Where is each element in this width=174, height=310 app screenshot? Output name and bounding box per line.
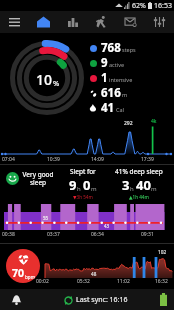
staticText: 05:32 xyxy=(77,278,90,285)
staticText: 16:32 xyxy=(155,278,168,285)
staticText: 616 xyxy=(101,85,121,100)
staticText: ▼3h 54m xyxy=(73,194,93,200)
staticText: active xyxy=(109,61,125,68)
staticText: 62% xyxy=(132,1,146,11)
staticText: 16:53 xyxy=(154,1,172,11)
button[interactable]: Home xyxy=(29,11,58,33)
button[interactable]: Last sync: 16:16 xyxy=(62,293,130,307)
staticText: 00:02 xyxy=(36,278,49,285)
staticText: 03:37 xyxy=(47,231,60,238)
staticText: 40 xyxy=(136,176,151,194)
staticText: ▲1h 44m xyxy=(129,194,149,200)
staticText: 4k xyxy=(151,118,157,125)
staticText: 292 xyxy=(124,120,133,127)
staticText: 768 xyxy=(101,40,121,55)
staticText: 17:39 xyxy=(141,156,154,163)
staticText: 48 xyxy=(91,271,97,277)
staticText: 00:38 xyxy=(2,231,15,238)
staticText: intensive xyxy=(109,76,133,83)
staticText: 41% deep sleep xyxy=(115,167,163,176)
staticText: 1 xyxy=(101,70,108,85)
staticText: steps xyxy=(122,46,136,53)
staticText: h xyxy=(77,185,81,193)
staticText: 09:31 xyxy=(141,231,154,238)
staticText: 70 xyxy=(12,266,25,280)
button[interactable]: 70 xyxy=(6,249,40,283)
staticText: 07:04 xyxy=(2,156,15,163)
staticText: 9 xyxy=(101,55,108,70)
staticText: bpm xyxy=(25,274,35,280)
button[interactable]: Activity xyxy=(87,11,116,33)
staticText: m xyxy=(91,185,97,193)
button[interactable]: Very good sleep xyxy=(6,170,54,187)
staticText: m xyxy=(122,91,128,98)
staticText: 11:02 xyxy=(117,278,130,285)
staticText: 0 xyxy=(83,176,91,194)
button[interactable]: Settings xyxy=(145,11,174,33)
staticText: Slept for xyxy=(70,167,96,176)
button[interactable]: Daily goal 10 percent xyxy=(0,39,96,135)
staticText: 41 xyxy=(101,100,115,115)
staticText: 43 xyxy=(104,223,110,229)
staticText: 14:09 xyxy=(91,156,104,163)
staticText: % xyxy=(53,78,60,88)
staticText: 3 xyxy=(122,176,130,194)
staticText: 10:39 xyxy=(47,156,60,163)
button[interactable]: Slept for xyxy=(60,165,106,200)
staticText: m xyxy=(151,185,157,193)
staticText: 9 xyxy=(69,176,77,194)
staticText: Very good sleep xyxy=(22,170,54,187)
button[interactable]: Messages xyxy=(116,11,145,33)
staticText: Cal xyxy=(116,106,124,113)
staticText: 06:34 xyxy=(91,231,104,238)
button[interactable]: 41% deep sleep xyxy=(108,165,170,200)
staticText: 55 xyxy=(43,215,49,221)
staticText: 102 xyxy=(158,249,167,256)
button[interactable]: Menu xyxy=(0,11,29,33)
staticText: 10 xyxy=(36,70,53,89)
button[interactable]: Notifications xyxy=(0,289,32,310)
staticText: Last sync: 16:16 xyxy=(76,295,128,305)
button[interactable]: Statistics xyxy=(58,11,87,33)
staticText: h xyxy=(130,185,134,193)
